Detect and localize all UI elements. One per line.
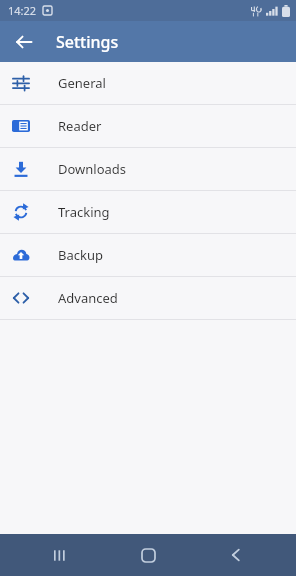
button[interactable]: Advanced [0,277,296,319]
button[interactable]: Recents [32,534,88,576]
staticText: Reader [58,117,102,135]
staticText: Settings [56,31,119,53]
button[interactable]: Back [6,24,42,60]
staticText: General [58,74,106,92]
button[interactable]: General [0,62,296,104]
staticText: Tracking [58,203,110,221]
button[interactable]: Backup [0,234,296,276]
button[interactable]: Back [208,534,264,576]
button[interactable]: Tracking [0,191,296,233]
staticText: Downloads [58,160,127,178]
button[interactable]: Downloads [0,148,296,190]
button[interactable]: Reader [0,105,296,147]
staticText: Advanced [58,289,118,307]
button[interactable]: Home [120,534,176,576]
staticText: Backup [58,246,103,264]
staticText: 14:22 [8,3,37,18]
